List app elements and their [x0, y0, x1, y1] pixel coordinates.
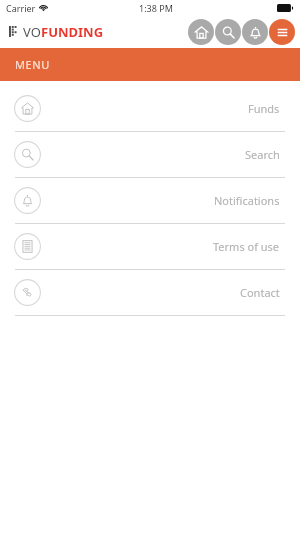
staticText: VO — [23, 23, 41, 41]
button[interactable]: Notifications — [242, 19, 268, 45]
button[interactable]: Search — [0, 132, 300, 177]
button[interactable]: Home — [188, 19, 214, 45]
staticText: Terms of use — [213, 239, 280, 254]
staticText: Search — [245, 147, 280, 162]
staticText: Carrier — [6, 2, 36, 14]
button[interactable]: Funds — [0, 86, 300, 131]
button[interactable]: Terms of use — [0, 224, 300, 269]
staticText: 1:38 PM — [139, 2, 173, 14]
staticText: Contact — [240, 285, 280, 300]
button[interactable]: Contact — [0, 270, 300, 315]
button[interactable]: Search — [215, 19, 241, 45]
staticText: Notifications — [214, 193, 280, 208]
button[interactable]: Notifications — [0, 178, 300, 223]
button[interactable]: Open menu — [269, 19, 295, 45]
staticText: FUNDING — [41, 23, 104, 41]
staticText: MENU — [15, 57, 50, 72]
staticText: Funds — [248, 101, 280, 116]
